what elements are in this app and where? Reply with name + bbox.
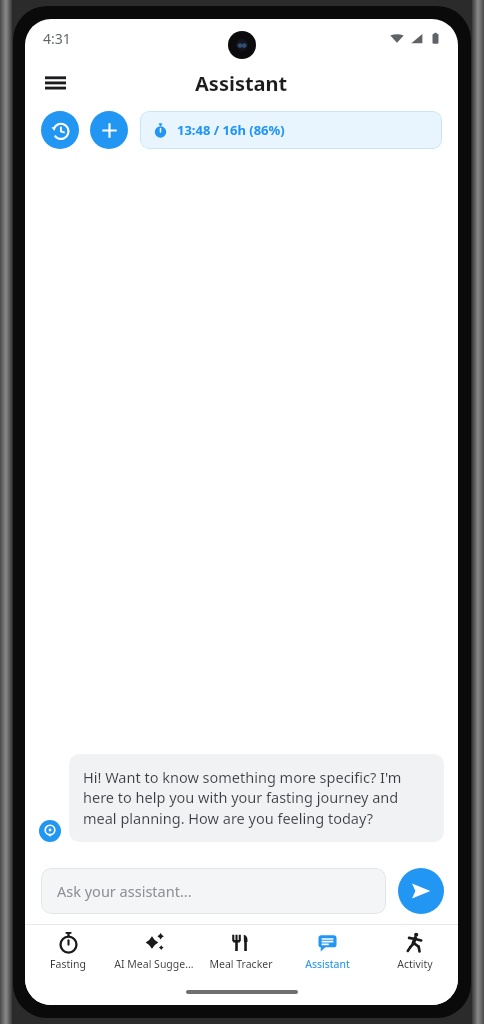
staticText: Assistant xyxy=(305,957,350,971)
button[interactable]: Activity xyxy=(371,925,458,979)
button[interactable]: AI Meal Sugge... xyxy=(111,925,197,979)
staticText: 13:48 / 16h (86%) xyxy=(177,121,285,139)
button[interactable]: Send xyxy=(398,868,444,914)
staticText: Activity xyxy=(397,957,433,971)
button[interactable]: Add xyxy=(90,111,128,149)
button[interactable]: Menu xyxy=(33,61,77,105)
staticText: 4:31 xyxy=(43,29,71,48)
button[interactable]: 13:48 / 16h (86%) xyxy=(140,111,442,149)
staticText: Ask your assistant... xyxy=(57,881,192,901)
staticText: AI Meal Sugge... xyxy=(114,957,194,971)
staticText: Hi! Want to know something more specific… xyxy=(83,767,430,829)
button[interactable]: Assistant xyxy=(284,925,371,979)
button[interactable]: Ask your assistant... xyxy=(41,868,386,914)
staticText: Fasting xyxy=(50,957,86,971)
button[interactable]: Hi! Want to know something more specific… xyxy=(69,754,444,842)
button[interactable]: Meal Tracker xyxy=(197,925,284,979)
button[interactable]: Fasting xyxy=(25,925,111,979)
button[interactable]: Fasting history xyxy=(41,111,79,149)
staticText: Meal Tracker xyxy=(209,957,273,971)
staticText: Assistant xyxy=(195,70,288,97)
